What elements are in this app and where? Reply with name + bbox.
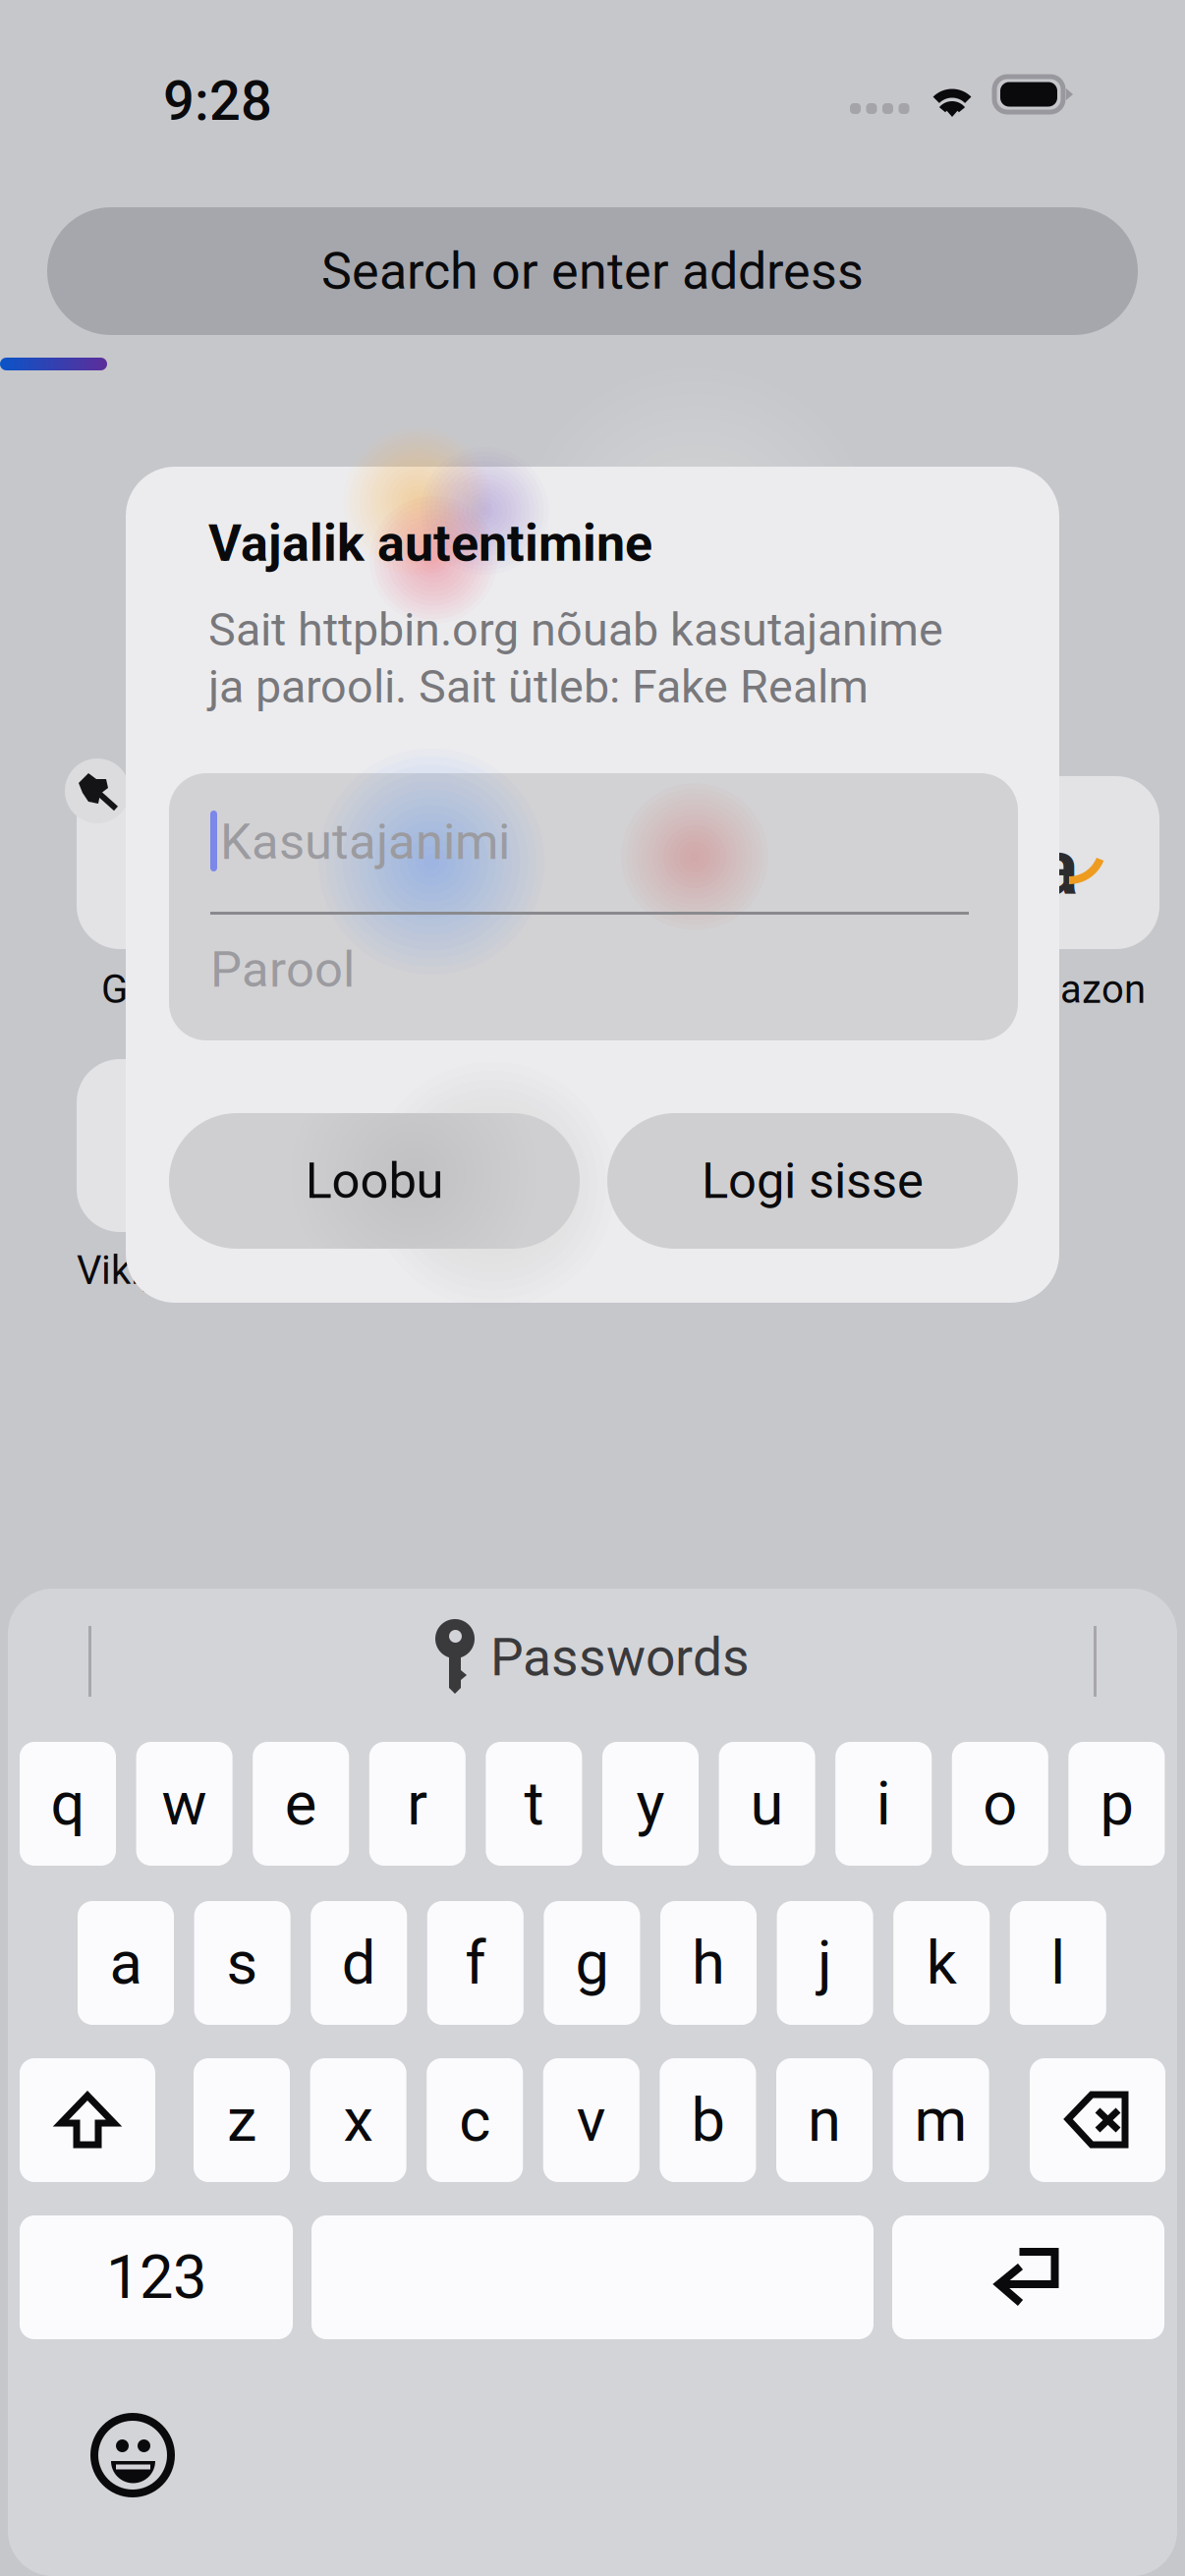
staticText: c [459, 2085, 491, 2156]
button[interactable]: x [310, 2058, 406, 2182]
button[interactable]: b [660, 2058, 756, 2182]
button[interactable]: Return [892, 2215, 1164, 2339]
staticText: W [128, 1099, 198, 1192]
button[interactable]: f [427, 1901, 524, 2025]
button[interactable]: t [486, 1742, 582, 1866]
button[interactable]: Delete [1030, 2058, 1165, 2182]
button[interactable]: q [20, 1742, 116, 1866]
staticText: 9:28 [163, 69, 272, 133]
button[interactable]: e [253, 1742, 349, 1866]
button[interactable]: g [544, 1901, 640, 2025]
button[interactable]: d [311, 1901, 407, 2025]
button[interactable]: z [194, 2058, 290, 2182]
staticText: u [750, 1769, 784, 1839]
staticText: k [926, 1928, 957, 1998]
staticText: h [692, 1928, 725, 1998]
button[interactable]: o [952, 1742, 1048, 1866]
staticText: i [876, 1769, 891, 1839]
staticText: Kasutajanimi [220, 813, 510, 871]
staticText: f [465, 1928, 486, 1998]
staticText: Parool [210, 941, 355, 999]
staticText: Vikipeedia [77, 1247, 257, 1293]
button[interactable]: m [893, 2058, 989, 2182]
button[interactable]: l [1010, 1901, 1106, 2025]
staticText: Loobu [305, 1152, 444, 1210]
button[interactable] [311, 2215, 874, 2339]
staticText: ja parooli. Sait ütleb: Fake Realm [208, 660, 869, 714]
staticText: Google [101, 966, 225, 1012]
staticText: x [344, 2085, 373, 2156]
button[interactable]: Emoji keyboard [94, 2417, 171, 2493]
staticText: r [407, 1769, 428, 1839]
staticText: Sait httpbin.org nõuab kasutajanime [208, 603, 943, 657]
staticText: s [227, 1928, 258, 1998]
staticText: n [808, 2085, 841, 2156]
button[interactable]: v [543, 2058, 639, 2182]
button[interactable]: n [776, 2058, 873, 2182]
button[interactable]: y [602, 1742, 699, 1866]
button[interactable]: u [719, 1742, 815, 1866]
button[interactable]: c [427, 2058, 523, 2182]
staticText: g [575, 1928, 609, 1998]
button[interactable]: 123 [20, 2215, 293, 2339]
staticText: 123 [106, 2242, 206, 2313]
button[interactable]: p [1068, 1742, 1165, 1866]
staticText: e [285, 1769, 317, 1839]
button[interactable]: Search or enter address [47, 207, 1138, 335]
staticText: Logi sisse [702, 1152, 924, 1210]
staticText: v [577, 2085, 606, 2156]
staticText: o [983, 1769, 1017, 1839]
staticText: m [914, 2085, 967, 2156]
staticText: a [110, 1928, 142, 1998]
button[interactable]: Loobu [169, 1113, 580, 1249]
staticText: Search or enter address [321, 241, 864, 301]
staticText: b [691, 2085, 725, 2156]
staticText: d [342, 1928, 376, 1998]
button[interactable]: h [660, 1901, 757, 2025]
staticText: t [524, 1769, 544, 1839]
staticText: Vajalik autentimine [208, 513, 652, 573]
staticText: Amazon [1000, 966, 1146, 1012]
staticText: q [51, 1769, 85, 1839]
staticText: p [1100, 1769, 1133, 1839]
button[interactable]: k [893, 1901, 990, 2025]
staticText: l [1051, 1928, 1065, 1998]
button[interactable]: i [835, 1742, 932, 1866]
button[interactable]: Shift [20, 2058, 155, 2182]
staticText: y [636, 1769, 665, 1839]
button[interactable]: j [777, 1901, 873, 2025]
button[interactable]: s [194, 1901, 290, 2025]
button[interactable]: Logi sisse [607, 1113, 1018, 1249]
staticText: w [162, 1769, 207, 1839]
staticText: Passwords [490, 1627, 750, 1688]
staticText: a [1038, 823, 1078, 912]
staticText: z [227, 2085, 256, 2156]
button[interactable]: a [78, 1901, 174, 2025]
button[interactable]: r [369, 1742, 466, 1866]
button[interactable]: w [136, 1742, 232, 1866]
staticText: j [818, 1928, 832, 1998]
